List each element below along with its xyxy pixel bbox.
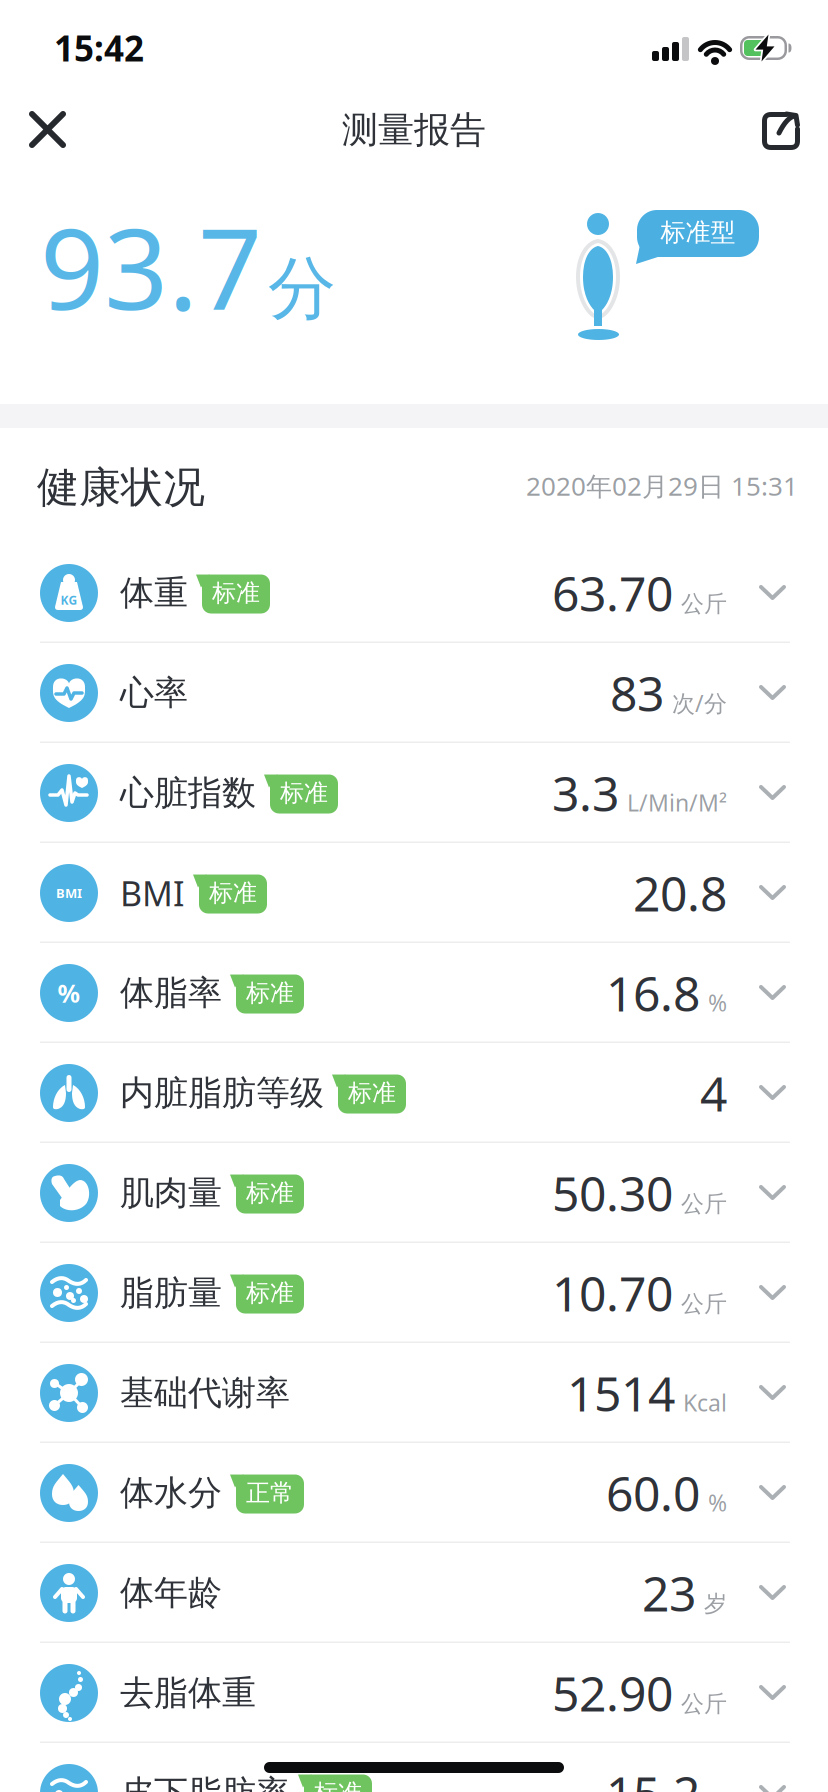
- staticText: 体脂率: [120, 972, 222, 1014]
- button[interactable]: Share: [750, 100, 812, 162]
- staticText: KG: [60, 592, 77, 608]
- staticText: 83: [610, 660, 664, 726]
- staticText: 标准: [348, 1078, 396, 1108]
- staticText: 4: [700, 1060, 727, 1126]
- staticText: 肌肉量: [120, 1172, 222, 1214]
- button[interactable]: 内脏脂肪等级: [0, 1043, 828, 1143]
- staticText: 公斤: [681, 1689, 727, 1718]
- staticText: 标准: [246, 978, 294, 1008]
- staticText: Kcal: [683, 1387, 727, 1418]
- staticText: 15:42: [54, 24, 144, 72]
- button[interactable]: 皮下脂肪率: [0, 1743, 828, 1792]
- staticText: %: [708, 1487, 727, 1518]
- staticText: 皮下脂肪率: [120, 1772, 290, 1792]
- staticText: 心脏指数: [120, 772, 256, 814]
- staticText: 50.30: [552, 1160, 673, 1226]
- staticText: 标准: [314, 1778, 362, 1792]
- staticText: 次/分: [672, 687, 727, 719]
- staticText: 去脂体重: [120, 1672, 256, 1714]
- staticText: 公斤: [681, 1289, 727, 1318]
- staticText: 公斤: [681, 589, 727, 618]
- staticText: BMI: [56, 884, 82, 902]
- button[interactable]: 去脂体重: [0, 1643, 828, 1743]
- staticText: 63.70: [552, 560, 673, 626]
- staticText: 标准: [280, 778, 328, 808]
- button[interactable]: 脂肪量: [0, 1243, 828, 1343]
- staticText: 60.0: [606, 1460, 700, 1526]
- button[interactable]: KG: [0, 543, 828, 643]
- button[interactable]: 肌肉量: [0, 1143, 828, 1243]
- staticText: 内脏脂肪等级: [120, 1072, 324, 1114]
- staticText: 正常: [246, 1478, 294, 1508]
- staticText: 标准: [246, 1178, 294, 1208]
- staticText: 标准: [246, 1278, 294, 1308]
- staticText: 公斤: [681, 1189, 727, 1218]
- staticText: 测量报告: [342, 107, 486, 153]
- button[interactable]: %: [0, 943, 828, 1043]
- staticText: 心率: [120, 672, 188, 714]
- staticText: 93.7: [40, 190, 262, 342]
- staticText: BMI: [120, 870, 185, 916]
- staticText: 3.3: [552, 760, 619, 826]
- staticText: 标准: [212, 578, 260, 608]
- staticText: 20.8: [633, 860, 727, 926]
- staticText: 体重: [120, 572, 188, 614]
- staticText: 1514: [567, 1360, 675, 1426]
- staticText: 2020年02月29日 15:31: [526, 468, 798, 503]
- button[interactable]: 心率: [0, 643, 828, 743]
- staticText: 23: [642, 1560, 696, 1626]
- staticText: 基础代谢率: [120, 1372, 290, 1414]
- button[interactable]: 基础代谢率: [0, 1343, 828, 1443]
- staticText: L/Min/M²: [627, 787, 727, 818]
- staticText: 健康状况: [37, 461, 205, 514]
- staticText: 15.2: [606, 1760, 700, 1792]
- staticText: 标准型: [660, 217, 735, 248]
- button[interactable]: 体水分: [0, 1443, 828, 1543]
- staticText: 标准: [209, 878, 257, 908]
- button[interactable]: 体年龄: [0, 1543, 828, 1643]
- button[interactable]: 心脏指数: [0, 743, 828, 843]
- staticText: 10.70: [552, 1260, 673, 1326]
- button[interactable]: BMI: [0, 843, 828, 943]
- staticText: 体年龄: [120, 1572, 222, 1614]
- staticText: 脂肪量: [120, 1272, 222, 1314]
- staticText: 分: [268, 246, 336, 332]
- button[interactable]: Close: [18, 100, 77, 159]
- staticText: %: [708, 987, 727, 1018]
- staticText: 岁: [704, 1589, 727, 1618]
- staticText: 16.8: [606, 960, 700, 1026]
- staticText: 52.90: [552, 1660, 673, 1726]
- staticText: %: [57, 976, 80, 1010]
- staticText: 体水分: [120, 1472, 222, 1514]
